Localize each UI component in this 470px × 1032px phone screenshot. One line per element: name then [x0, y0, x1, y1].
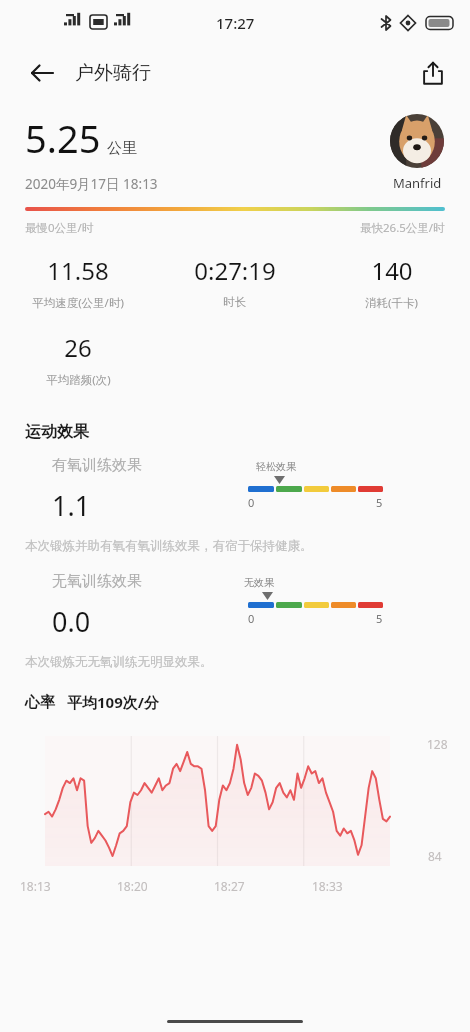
staticText: 0:27:19	[194, 254, 276, 287]
button[interactable]: Share	[412, 52, 454, 94]
staticText: 5	[376, 611, 383, 626]
staticText: 户外骑行	[75, 61, 151, 85]
staticText: 11.58	[47, 254, 109, 287]
staticText: Manfrid	[393, 174, 442, 192]
staticText: 时长	[223, 295, 246, 309]
staticText: 17:27	[216, 13, 255, 33]
staticText: 平均109次/分	[67, 692, 159, 712]
staticText: 26	[64, 331, 92, 364]
staticText: 1.1	[52, 487, 91, 524]
staticText: 0	[248, 495, 255, 510]
staticText: 有氧训练效果	[52, 456, 142, 475]
staticText: 84	[428, 848, 442, 864]
staticText: 140	[371, 254, 413, 287]
staticText: 2020年9月17日 18:13	[25, 175, 158, 193]
staticText: 最快26.5公里/时	[360, 220, 445, 236]
staticText: 平均踏频(次)	[46, 372, 111, 388]
staticText: 5	[376, 495, 383, 510]
staticText: 无氧训练效果	[52, 572, 142, 591]
staticText: 18:20	[117, 878, 148, 894]
staticText: 5.25	[25, 112, 101, 164]
staticText: 本次锻炼无无氧训练无明显效果。	[25, 654, 213, 670]
staticText: 0.0	[52, 603, 91, 640]
button[interactable]: User profile Manfrid	[390, 114, 444, 192]
staticText: 轻松效果	[256, 460, 296, 473]
staticText: 消耗(千卡)	[365, 295, 418, 311]
staticText: 平均速度(公里/时)	[32, 295, 124, 311]
staticText: 本次锻炼并助有氧有氧训练效果，有宿于保持健康。	[25, 538, 313, 554]
staticText: 18:27	[214, 878, 245, 894]
staticText: 18:13	[20, 878, 51, 894]
staticText: 128	[427, 736, 448, 752]
staticText: 无效果	[244, 576, 274, 589]
staticText: 最慢0公里/时	[25, 220, 94, 236]
staticText: 0	[248, 611, 255, 626]
staticText: 18:33	[312, 878, 343, 894]
staticText: 公里	[107, 139, 137, 158]
staticText: 运动效果	[25, 422, 89, 442]
button[interactable]: Back	[20, 51, 64, 95]
staticText: 心率	[25, 693, 55, 712]
